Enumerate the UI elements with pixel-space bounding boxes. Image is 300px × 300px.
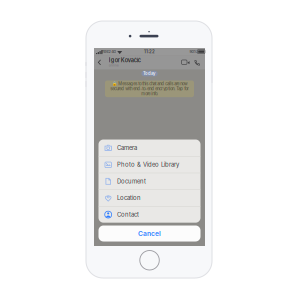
staticText: Contact — [117, 211, 139, 218]
staticText: Cancel — [138, 229, 161, 238]
staticText: 🔒 Messages to this chat and calls are no… — [110, 81, 189, 96]
button[interactable]: Voice call — [191, 56, 204, 68]
staticText: 90% — [189, 49, 197, 54]
button[interactable]: Photo & Video Library — [98, 156, 200, 173]
staticText: Location — [117, 194, 141, 202]
staticText: Photo & Video Library — [117, 161, 179, 168]
staticText: 4G — [111, 49, 116, 54]
staticText: 11:22 — [144, 49, 155, 54]
button[interactable]: Video call — [179, 56, 191, 68]
staticText: Camera — [117, 144, 137, 151]
button[interactable]: Camera — [98, 139, 200, 156]
button[interactable]: Contact — [98, 206, 200, 223]
staticText: Igor Kovačić — [109, 57, 141, 64]
button[interactable]: Cancel — [98, 225, 200, 241]
staticText: Tele2 — [101, 49, 110, 54]
staticText: Document — [117, 178, 146, 185]
staticText: online — [109, 63, 119, 67]
button[interactable]: Back — [95, 56, 104, 69]
button[interactable]: Location — [98, 189, 200, 206]
staticText: Today — [143, 71, 156, 76]
button[interactable]: Document — [98, 173, 200, 189]
